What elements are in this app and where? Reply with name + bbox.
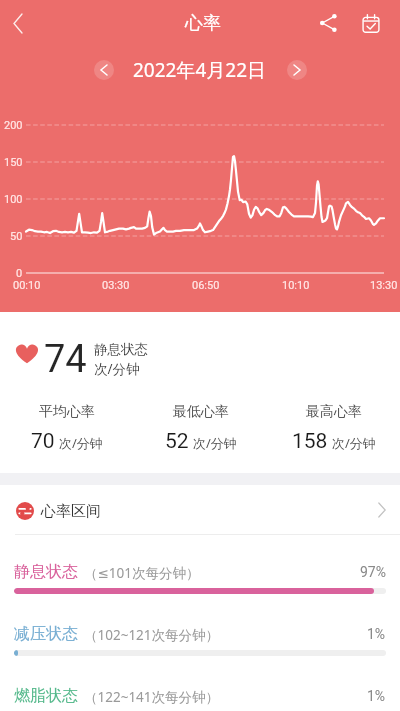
staticText: 97% [360,564,386,580]
button[interactable]: 静息状态 [0,535,400,597]
staticText: （122~141次每分钟） [84,688,220,706]
button[interactable]: Calendar [350,0,392,46]
staticText: 心率区间 [41,502,101,521]
button[interactable]: 减压状态 [0,597,400,659]
staticText: 03:30 [102,279,130,292]
staticText: 平均心率 [39,403,95,421]
staticText: 1% [367,688,386,704]
button[interactable]: Share [306,0,350,46]
staticText: 13:30 [370,279,398,292]
staticText: 74 [44,337,87,382]
staticText: 0 [16,267,23,280]
button[interactable]: 燃脂状态 [0,659,400,711]
staticText: 158 [292,429,328,454]
button[interactable]: 心率区间 [0,485,400,534]
staticText: 燃脂状态 [14,686,78,706]
staticText: 次/分钟 [94,360,140,378]
staticText: 最高心率 [306,403,362,421]
staticText: 200 [4,119,23,132]
staticText: 06:50 [192,279,220,292]
staticText: 减压状态 [14,624,78,644]
staticText: 52 [165,429,189,454]
staticText: 2022年4月22日 [133,57,267,83]
staticText: 150 [4,156,23,169]
button[interactable]: Back [0,0,38,46]
staticText: 50 [10,230,23,243]
staticText: 10:10 [282,279,310,292]
staticText: 00:10 [13,279,41,292]
staticText: 静息状态 [94,341,148,358]
staticText: 100 [4,193,23,206]
staticText: 次/分钟 [193,434,237,452]
staticText: 1% [367,626,386,642]
staticText: 心率 [185,12,221,35]
button[interactable]: Previous day [94,60,114,80]
staticText: （≤101次每分钟） [84,564,200,582]
staticText: 次/分钟 [332,434,376,452]
staticText: 次/分钟 [59,434,103,452]
staticText: 静息状态 [14,562,78,582]
staticText: 70 [31,429,55,454]
staticText: （102~121次每分钟） [84,626,220,644]
button[interactable]: Next day [287,60,307,80]
staticText: 最低心率 [173,403,229,421]
